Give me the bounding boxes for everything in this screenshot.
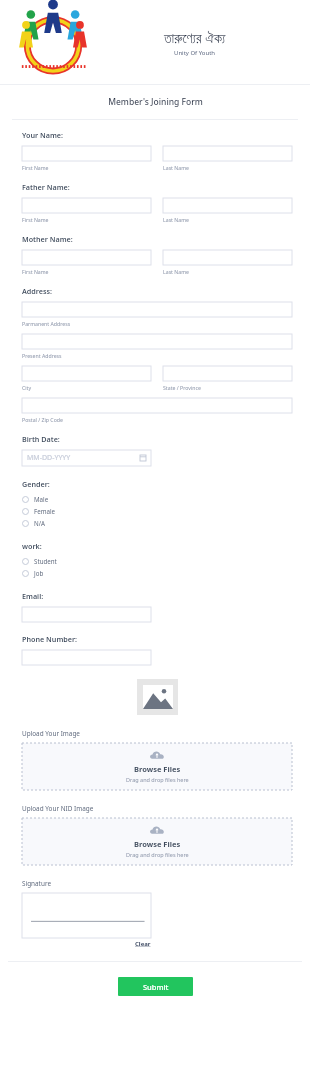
- staticText: Member's Joining Form: [108, 96, 203, 108]
- staticText: Gender:: [22, 479, 50, 489]
- button[interactable]: [22, 146, 151, 161]
- button[interactable]: [22, 650, 151, 665]
- staticText: Parmanent Address: [22, 320, 292, 327]
- staticText: Drag and drop files here: [126, 776, 189, 783]
- staticText: First Name: [22, 164, 151, 171]
- staticText: First Name: [22, 216, 151, 223]
- staticText: Birth Date:: [22, 434, 60, 444]
- staticText: Your Name:: [22, 130, 63, 140]
- staticText: Clear: [135, 940, 151, 948]
- staticText: Phone Number:: [22, 634, 78, 644]
- staticText: Postal / Zip Code: [22, 416, 292, 423]
- staticText: Email:: [22, 591, 44, 601]
- staticText: Upload Your NID Image: [22, 804, 94, 813]
- button[interactable]: Signature pad: [22, 893, 151, 938]
- button[interactable]: Profile image: [137, 679, 178, 715]
- button[interactable]: Browse Files: [22, 743, 292, 790]
- staticText: Drag and drop files here: [126, 851, 189, 858]
- button[interactable]: Submit: [118, 977, 193, 996]
- button[interactable]: [163, 250, 292, 265]
- button[interactable]: [22, 398, 292, 413]
- staticText: তারুণ্যের ঐক্য: [164, 28, 226, 47]
- button[interactable]: [22, 198, 151, 213]
- button[interactable]: Student: [22, 555, 57, 567]
- button[interactable]: [22, 607, 151, 622]
- staticText: work:: [22, 541, 42, 551]
- staticText: Browse Files: [134, 839, 181, 849]
- staticText: Student: [34, 557, 57, 565]
- staticText: Mother Name:: [22, 234, 73, 244]
- staticText: Female: [34, 507, 56, 515]
- button[interactable]: Female: [22, 505, 56, 517]
- button[interactable]: Job: [22, 567, 44, 579]
- staticText: Upload Your Image: [22, 729, 80, 738]
- staticText: N/A: [34, 519, 45, 527]
- staticText: Job: [34, 569, 44, 577]
- staticText: State / Province: [163, 384, 292, 391]
- button[interactable]: [163, 146, 292, 161]
- button[interactable]: Clear: [135, 938, 151, 948]
- button[interactable]: [163, 366, 292, 381]
- staticText: City: [22, 384, 151, 391]
- staticText: Last Name: [163, 164, 292, 171]
- button[interactable]: N/A: [22, 517, 45, 529]
- staticText: Father Name:: [22, 182, 70, 192]
- staticText: Last Name: [163, 216, 292, 223]
- button[interactable]: [163, 198, 292, 213]
- staticText: Signature: [22, 879, 51, 888]
- button[interactable]: [22, 366, 151, 381]
- staticText: First Name: [22, 268, 151, 275]
- staticText: MM-DD-YYYY: [27, 453, 71, 463]
- staticText: Last Name: [163, 268, 292, 275]
- button[interactable]: [22, 302, 292, 317]
- staticText: Address:: [22, 286, 53, 296]
- button[interactable]: Browse Files: [22, 818, 292, 865]
- staticText: Browse Files: [134, 764, 181, 774]
- staticText: Unity Of Youth: [174, 49, 216, 57]
- staticText: Present Address: [22, 352, 292, 359]
- button[interactable]: MM-DD-YYYY: [22, 450, 151, 466]
- button[interactable]: Male: [22, 493, 49, 505]
- staticText: Male: [34, 495, 49, 503]
- button[interactable]: [22, 334, 292, 349]
- button[interactable]: [22, 250, 151, 265]
- staticText: Submit: [143, 982, 169, 992]
